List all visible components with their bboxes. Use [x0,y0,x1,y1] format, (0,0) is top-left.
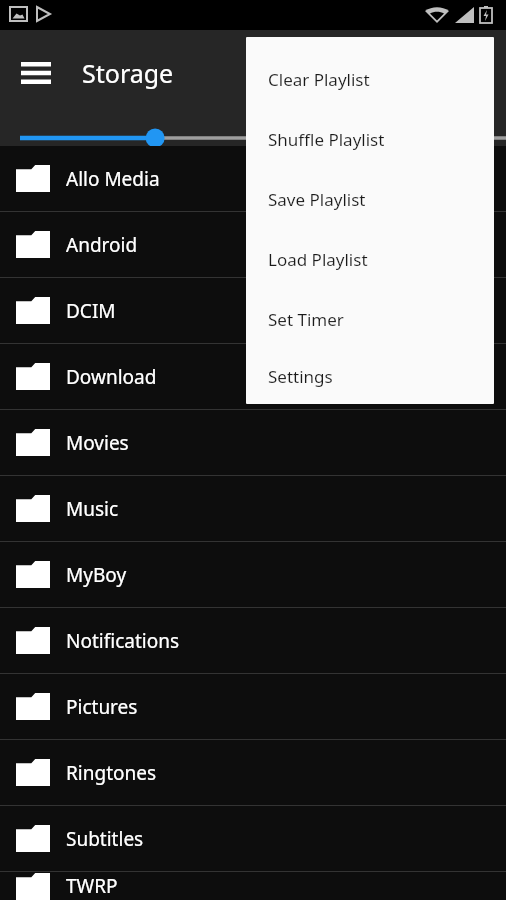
button[interactable]: Shuffle Playlist [246,109,494,169]
button[interactable]: Open navigation drawer [12,49,60,97]
button[interactable]: MyBoy [0,542,506,607]
button[interactable]: Movies [0,410,506,475]
staticText: MyBoy [66,562,127,588]
button[interactable]: Ringtones [0,740,506,805]
button[interactable]: Music [0,476,506,541]
button[interactable]: Set Timer [246,289,494,349]
button[interactable]: Save Playlist [246,169,494,229]
button[interactable]: Allo Media [0,146,506,211]
staticText: Music [66,496,119,522]
button[interactable]: Pictures [0,674,506,739]
staticText: Clear Playlist [268,68,370,91]
button[interactable]: Subtitles [0,806,506,871]
button[interactable]: TWRP [0,872,506,900]
button[interactable]: Seek bar [0,130,506,146]
button[interactable]: Load Playlist [246,229,494,289]
button[interactable]: Android [0,212,506,277]
staticText: Storage [82,56,174,90]
staticText: Ringtones [66,760,157,786]
staticText: Movies [66,430,129,456]
staticText: Pictures [66,694,138,720]
staticText: Android [66,232,138,258]
staticText: Load Playlist [268,248,368,271]
staticText: Subtitles [66,826,144,852]
staticText: TWRP [66,873,118,899]
staticText: DCIM [66,298,116,324]
staticText: Allo Media [66,166,160,192]
staticText: Set Timer [268,308,344,331]
staticText: Download [66,364,157,390]
button[interactable]: DCIM [0,278,506,343]
button[interactable]: Clear Playlist [246,49,494,109]
button[interactable]: Settings [246,349,494,404]
staticText: Save Playlist [268,188,366,211]
staticText: Notifications [66,628,180,654]
button[interactable]: Download [0,344,506,409]
staticText: Settings [268,365,333,388]
staticText: Shuffle Playlist [268,128,385,151]
button[interactable]: Notifications [0,608,506,673]
